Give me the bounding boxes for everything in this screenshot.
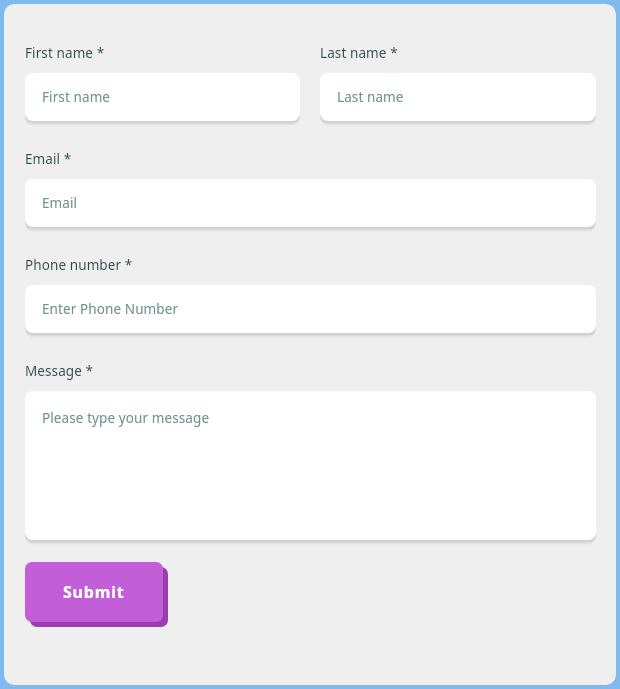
staticText: First name * <box>25 44 105 62</box>
staticText: Message * <box>25 362 94 380</box>
button[interactable]: Please type your message <box>25 391 596 540</box>
button[interactable]: Enter Phone Number <box>25 285 596 333</box>
staticText: Last name <box>337 88 404 106</box>
staticText: Please type your message <box>42 409 210 427</box>
staticText: Enter Phone Number <box>42 300 179 318</box>
staticText: Submit <box>63 581 125 603</box>
staticText: First name <box>42 88 111 106</box>
staticText: Phone number * <box>25 256 133 274</box>
button[interactable]: Submit <box>25 562 168 627</box>
staticText: Email * <box>25 150 72 168</box>
staticText: Last name * <box>320 44 398 62</box>
button[interactable]: Email <box>25 179 596 227</box>
button[interactable]: First name <box>25 73 300 121</box>
staticText: Email <box>42 194 78 212</box>
button[interactable]: Last name <box>320 73 596 121</box>
